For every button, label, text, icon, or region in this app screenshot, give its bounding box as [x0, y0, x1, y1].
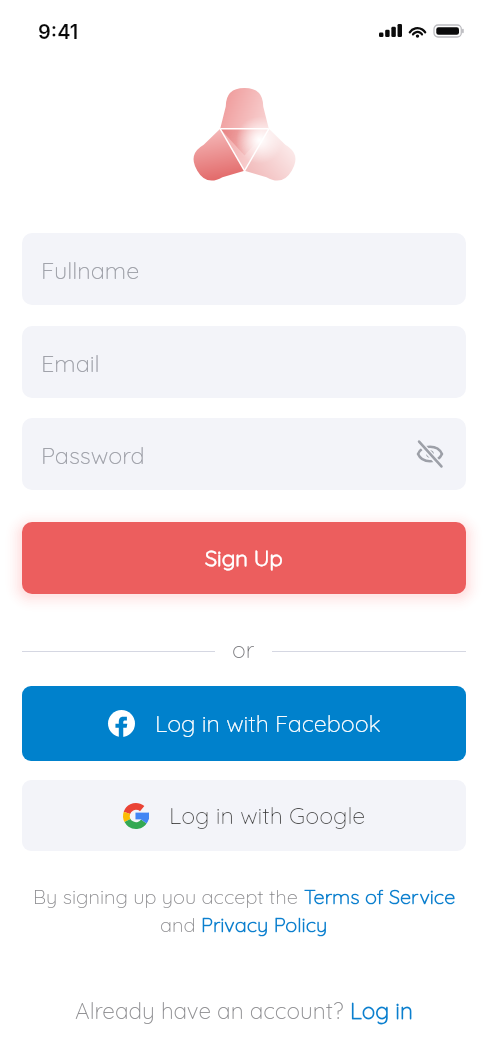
button[interactable]: Log in — [350, 996, 413, 1024]
button[interactable]: Show password — [414, 438, 446, 470]
button[interactable]: Log in with Facebook — [22, 686, 466, 761]
button[interactable]: Email — [22, 326, 466, 398]
button[interactable]: Log in with Google — [22, 780, 466, 851]
staticText: Email — [41, 348, 100, 377]
staticText: By signing up you accept the — [33, 884, 304, 909]
staticText: 9:41 — [38, 20, 79, 44]
staticText: Already have an account? — [75, 996, 350, 1024]
staticText: Fullname — [41, 255, 140, 284]
staticText: Password — [41, 440, 145, 469]
staticText: and — [160, 912, 201, 937]
staticText: Log in with Google — [169, 801, 366, 830]
button[interactable]: Terms of Service — [304, 884, 456, 909]
staticText: Log in with Facebook — [155, 709, 381, 738]
staticText: Sign Up — [205, 544, 283, 572]
button[interactable]: Sign Up — [22, 522, 466, 594]
button[interactable]: Fullname — [22, 233, 466, 305]
staticText: or — [232, 635, 255, 664]
button[interactable]: Password — [22, 418, 466, 490]
button[interactable]: Privacy Policy — [201, 912, 328, 937]
